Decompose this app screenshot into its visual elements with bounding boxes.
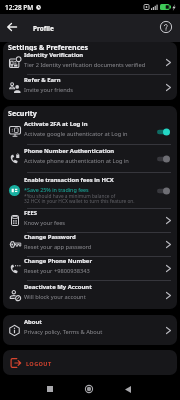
staticText: Enable transaction fees in HCX	[24, 176, 114, 184]
button[interactable]: Change Password	[3, 233, 177, 256]
button[interactable]: Help	[153, 14, 179, 40]
staticText: Will block your account	[24, 293, 86, 301]
staticText: Settings & Preferences	[8, 43, 89, 51]
staticText: *You should have a minimum balance of 32…	[24, 193, 135, 204]
staticText: FEES	[24, 209, 38, 217]
button[interactable]: Enable transaction fees in HCX	[3, 173, 177, 208]
button[interactable]: Identity Verification	[3, 51, 177, 74]
staticText: Know your fees	[24, 219, 66, 227]
button[interactable]: LOGOUT	[3, 350, 177, 375]
staticText: Refer & Earn	[24, 76, 61, 84]
staticText: Change Phone Number	[24, 257, 93, 265]
staticText: About	[24, 318, 42, 326]
staticText: 12:28 PM	[5, 3, 34, 12]
button[interactable]: Switch off	[157, 155, 172, 163]
staticText: Security	[8, 109, 37, 119]
staticText: Activate google authenticator at Log in	[24, 130, 128, 138]
staticText: *Save 25% in trading fees	[24, 186, 89, 193]
staticText: Phone Number Authentication	[24, 147, 115, 155]
staticText: Activate 2FA at Log in	[24, 120, 88, 128]
button[interactable]: Phone Number Authentication	[3, 145, 177, 172]
button[interactable]: Activate 2FA at Log in	[3, 119, 177, 144]
staticText: Identity Verification	[24, 51, 84, 59]
button[interactable]: Refer & Earn	[3, 75, 177, 100]
staticText: Reset your app password	[24, 243, 92, 251]
button[interactable]: Recents	[40, 379, 60, 399]
staticText: Change Password	[24, 233, 76, 241]
staticText: Activate phone authentication at Log in	[24, 157, 129, 165]
staticText: Tier 2 Identity verification documents v…	[24, 61, 146, 69]
staticText: LOGOUT	[26, 360, 52, 368]
button[interactable]: Change Phone Number	[3, 257, 177, 280]
button[interactable]: Back	[118, 379, 138, 399]
staticText: Reset your +9800938343	[24, 267, 90, 275]
button[interactable]: Switch on	[157, 128, 172, 136]
button[interactable]: Switch off	[157, 187, 172, 195]
button[interactable]: Deactivate My Account	[3, 281, 177, 309]
staticText: Profile	[33, 24, 54, 33]
staticText: Deactivate My Account	[24, 283, 92, 291]
staticText: Privacy policy, Terms & About	[24, 328, 103, 336]
button[interactable]: Back	[0, 14, 24, 40]
staticText: Invite your friends	[24, 86, 73, 94]
button[interactable]: About	[3, 315, 177, 345]
button[interactable]: Home	[79, 379, 99, 399]
button[interactable]: FEES	[3, 209, 177, 232]
